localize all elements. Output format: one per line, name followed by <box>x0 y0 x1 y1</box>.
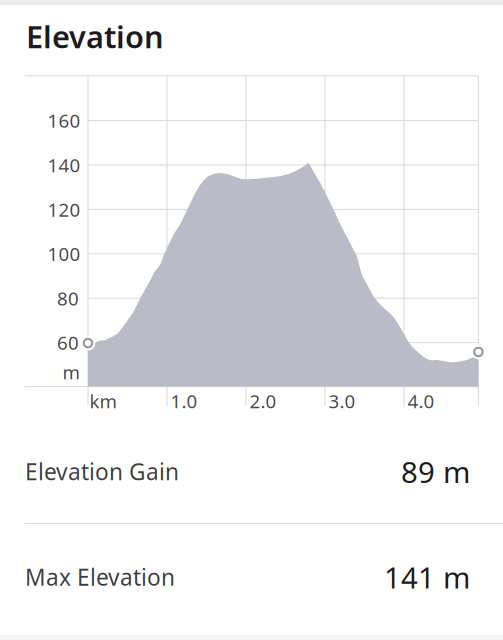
staticText: 4.0 <box>407 389 434 413</box>
staticText: 89 m <box>401 452 470 491</box>
staticText: km <box>89 389 116 413</box>
staticText: Elevation Gain <box>25 456 179 486</box>
staticText: Max Elevation <box>25 562 175 592</box>
staticText: 2.0 <box>249 389 276 413</box>
button[interactable]: Elevation Gain <box>0 406 503 523</box>
staticText: 60 <box>57 330 79 355</box>
staticText: 120 <box>47 197 80 222</box>
staticText: 1.0 <box>170 389 197 413</box>
staticText: 160 <box>47 108 80 133</box>
button[interactable]: Max Elevation <box>0 524 503 640</box>
staticText: m <box>62 360 79 384</box>
staticText: 80 <box>57 286 79 311</box>
staticText: Elevation <box>26 16 164 57</box>
staticText: 141 m <box>384 557 470 596</box>
staticText: 140 <box>47 153 80 177</box>
staticText: 100 <box>47 241 80 266</box>
staticText: 3.0 <box>328 389 355 413</box>
